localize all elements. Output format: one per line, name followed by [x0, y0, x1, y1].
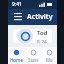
button[interactable]: Me: [41, 47, 57, 64]
button[interactable]: Stats: [25, 47, 41, 64]
button[interactable]: Menu: [12, 11, 24, 23]
staticText: Me: [46, 57, 53, 63]
button[interactable]: Home: [8, 47, 25, 64]
staticText: 9:41: [12, 1, 22, 8]
staticText: Stats: [28, 57, 39, 63]
staticText: Home: [10, 57, 23, 63]
button[interactable]: Today: [13, 29, 52, 43]
staticText: Today: [37, 29, 48, 37]
staticText: 8,240 steps: [37, 39, 48, 43]
staticText: Activity: [27, 12, 53, 22]
